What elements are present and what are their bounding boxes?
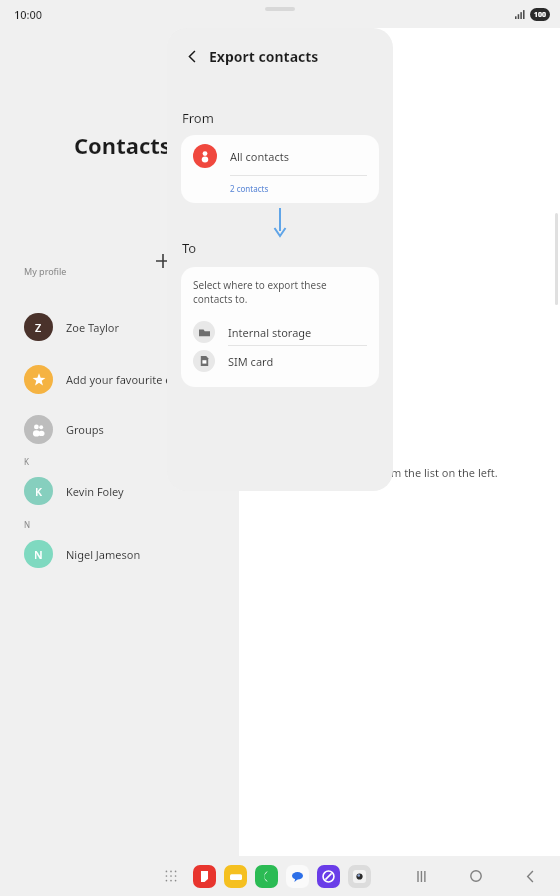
staticText: N	[34, 547, 43, 562]
staticText: 2 contacts	[230, 183, 269, 194]
staticText: From	[182, 109, 214, 127]
staticText: Export contacts	[209, 47, 319, 66]
staticText: 100	[534, 10, 547, 20]
button[interactable]: All contacts	[181, 135, 379, 203]
staticText: All contacts	[230, 149, 289, 164]
staticText: Nigel Jameson	[66, 547, 141, 562]
staticText: SIM card	[228, 354, 274, 369]
button[interactable]: Back	[181, 45, 203, 67]
button[interactable]: App	[317, 865, 340, 888]
button[interactable]: Recents	[406, 860, 438, 892]
button[interactable]: App	[348, 865, 371, 888]
button[interactable]: Home	[460, 860, 492, 892]
staticText: Kevin Foley	[66, 484, 124, 499]
button[interactable]: SIM card	[193, 346, 367, 376]
staticText: Add your favourite c	[66, 372, 171, 387]
staticText: Groups	[66, 422, 104, 437]
staticText: Contacts	[74, 130, 171, 160]
button[interactable]: Groups	[24, 413, 184, 445]
staticText: N	[24, 519, 31, 530]
staticText: K	[35, 484, 42, 499]
staticText: m the list on the left.	[391, 465, 498, 480]
staticText: To	[182, 239, 197, 257]
button[interactable]: Back	[514, 860, 546, 892]
button[interactable]: K	[24, 477, 184, 505]
staticText: Internal storage	[228, 325, 312, 340]
staticText: Zoe Taylor	[66, 320, 120, 335]
button[interactable]: Add contact	[150, 248, 176, 274]
button[interactable]: App	[193, 865, 216, 888]
staticText: My profile	[24, 265, 67, 277]
button[interactable]: Internal storage	[193, 319, 367, 345]
staticText: Z	[35, 320, 42, 335]
staticText: Select where to export these contacts to…	[193, 278, 367, 306]
button[interactable]: App	[286, 865, 309, 888]
staticText: K	[24, 456, 29, 467]
button[interactable]: N	[24, 540, 184, 568]
button[interactable]: All apps	[158, 863, 184, 889]
button[interactable]: Add your favourite c	[24, 363, 184, 395]
button[interactable]: App	[224, 865, 247, 888]
staticText: 10:00	[14, 7, 43, 22]
button[interactable]: App	[255, 865, 278, 888]
button[interactable]: Z	[24, 313, 184, 341]
